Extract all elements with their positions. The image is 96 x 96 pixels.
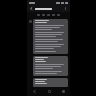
button[interactable] [29,19,68,54]
button[interactable]: More options [63,6,68,11]
button[interactable]: Home [42,87,56,96]
button[interactable]: Recents [56,87,70,96]
button[interactable]: Back [29,6,34,11]
button[interactable] [37,14,40,16]
button[interactable] [47,14,50,16]
button[interactable] [29,78,68,87]
button[interactable]: Back [27,87,42,96]
button[interactable] [42,14,45,16]
button[interactable] [52,14,55,16]
button[interactable] [57,14,60,16]
button[interactable] [29,56,68,76]
button[interactable] [35,8,63,10]
